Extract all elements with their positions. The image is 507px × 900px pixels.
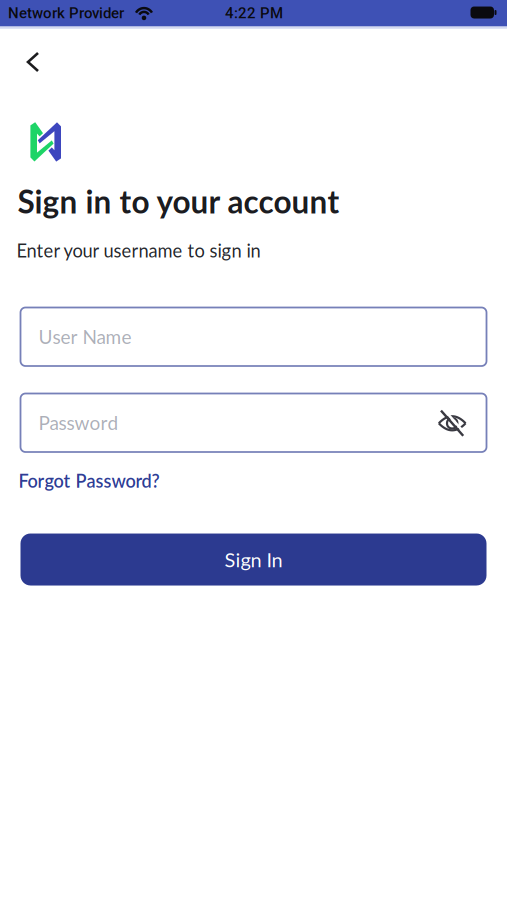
staticText: Password bbox=[38, 411, 118, 434]
staticText: User Name bbox=[38, 325, 131, 348]
staticText: 4:22 PM bbox=[225, 4, 283, 22]
button[interactable]: Forgot Password? bbox=[18, 470, 159, 492]
button[interactable]: User Name bbox=[20, 307, 486, 366]
button[interactable]: Show password bbox=[438, 409, 467, 438]
staticText: Sign In bbox=[224, 547, 282, 571]
staticText: Sign in to your account bbox=[17, 182, 339, 220]
staticText: Forgot Password? bbox=[18, 470, 159, 492]
button[interactable]: Sign In bbox=[20, 533, 486, 585]
staticText: Network Provider bbox=[8, 4, 124, 22]
staticText: Enter your username to sign in bbox=[16, 239, 260, 261]
button[interactable]: Password bbox=[20, 393, 486, 452]
button[interactable]: Back bbox=[17, 45, 51, 79]
